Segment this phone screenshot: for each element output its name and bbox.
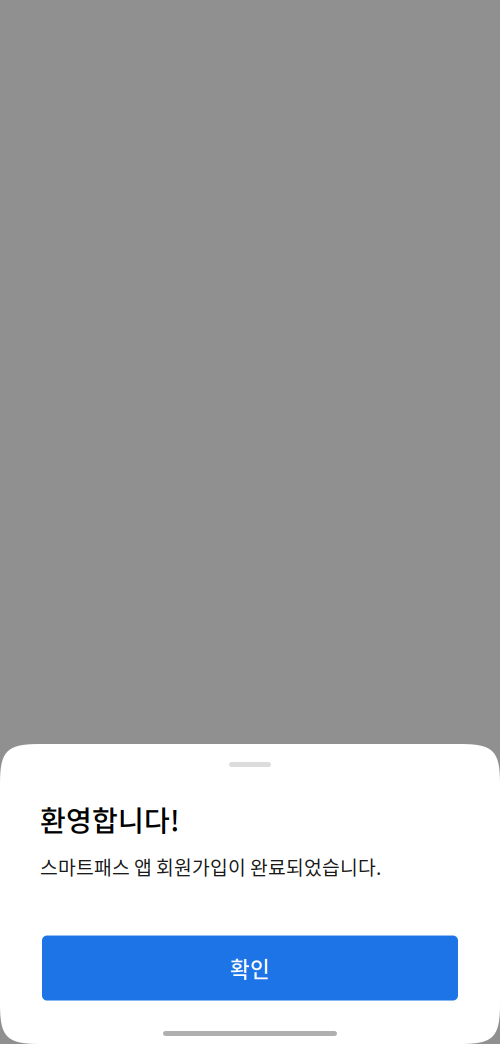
button[interactable]: Dismiss (0, 0, 500, 1044)
staticText: 환영합니다! (40, 799, 180, 839)
staticText: 스마트패스 앱 회원가입이 완료되었습니다. (40, 852, 381, 880)
staticText: 확인 (230, 953, 270, 983)
button[interactable]: 확인 (42, 935, 458, 1000)
